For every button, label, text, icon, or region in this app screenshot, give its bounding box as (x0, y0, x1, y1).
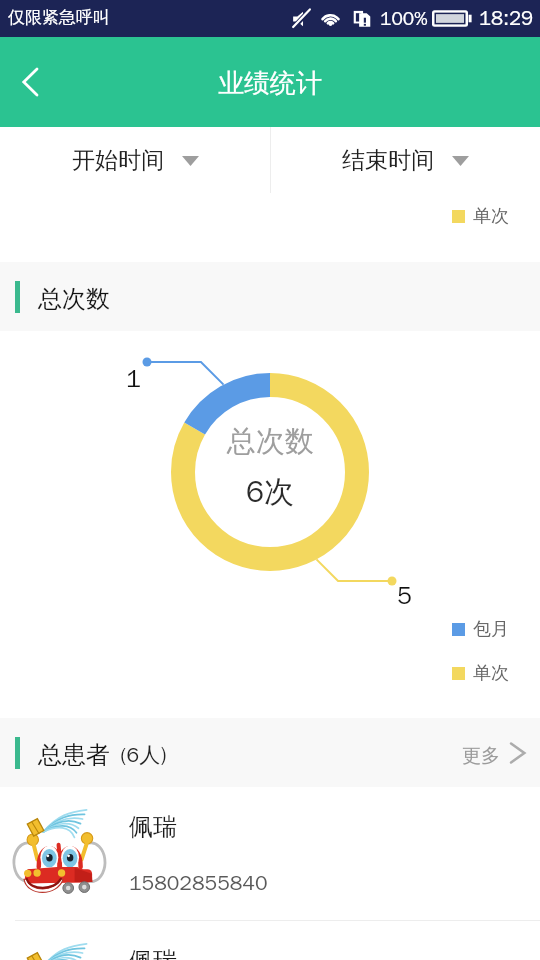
button[interactable]: 结束时间 (270, 127, 540, 193)
button[interactable]: Back (0, 51, 62, 113)
staticText: 100% (380, 7, 428, 31)
button[interactable]: 佩瑞 (0, 787, 540, 920)
staticText: 仅限紧急呼叫 (8, 7, 110, 28)
staticText: 18:29 (479, 6, 533, 31)
staticText: 更多 (462, 744, 500, 768)
staticText: (6人) (114, 742, 167, 768)
staticText: 开始时间 (72, 146, 164, 175)
button[interactable]: 开始时间 (0, 127, 270, 193)
staticText: 佩瑞 (129, 946, 177, 960)
staticText: 1 (126, 363, 141, 394)
button[interactable]: 更多 (0, 718, 540, 787)
staticText: 15802855840 (129, 870, 268, 896)
staticText: 总患者 (38, 740, 110, 770)
staticText: 总次数 (227, 423, 314, 460)
staticText: 5 (397, 580, 412, 611)
staticText: 包月 (473, 618, 509, 641)
staticText: 总次数 (38, 284, 110, 314)
staticText: 业绩统计 (218, 67, 322, 100)
staticText: 单次 (473, 205, 509, 228)
staticText: 单次 (473, 662, 509, 685)
staticText: 佩瑞 (129, 812, 177, 842)
staticText: 6次 (246, 473, 294, 511)
staticText: 结束时间 (342, 146, 434, 175)
button[interactable]: 佩瑞 (0, 921, 540, 960)
